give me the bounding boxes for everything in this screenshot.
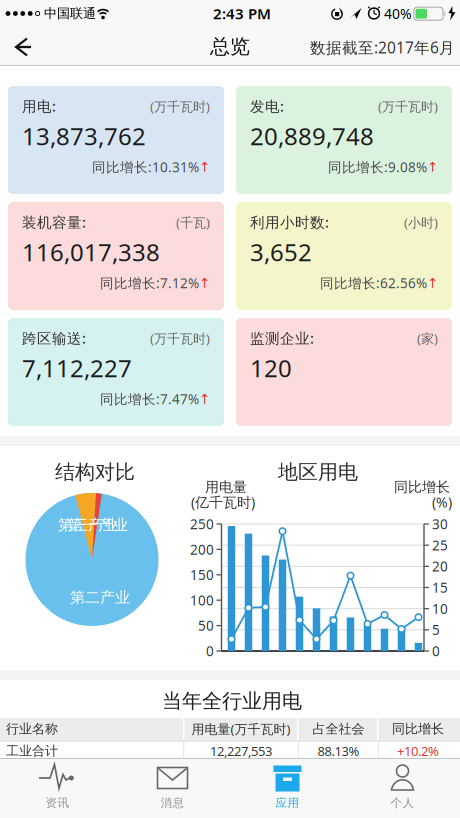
staticText: 消息 bbox=[160, 796, 184, 810]
staticText: (小时) bbox=[404, 214, 438, 231]
button[interactable] bbox=[0, 27, 44, 66]
staticText: 88.13% bbox=[317, 742, 359, 760]
staticText: 利用小时数: bbox=[250, 212, 329, 232]
button[interactable]: 应用 bbox=[230, 758, 345, 818]
staticText: 总览 bbox=[210, 34, 250, 59]
staticText: (万千瓦时) bbox=[150, 98, 210, 115]
staticText: 数据截至:2017年6月 bbox=[310, 37, 455, 58]
staticText: ↑ bbox=[199, 275, 210, 291]
staticText: 120 bbox=[250, 352, 292, 384]
staticText: 20 bbox=[432, 557, 448, 575]
staticText: (家) bbox=[417, 330, 438, 347]
staticText: 同比增长:10.31% bbox=[92, 158, 199, 176]
staticText: 第二产业 bbox=[70, 588, 130, 607]
staticText: 25 bbox=[432, 536, 448, 554]
staticText: 150 bbox=[190, 566, 214, 584]
staticText: 同比增长:7.12% bbox=[100, 274, 199, 292]
staticText: 12,227,553 bbox=[210, 742, 272, 760]
staticText: 10 bbox=[432, 599, 448, 618]
staticText: 工业合计 bbox=[6, 743, 58, 759]
staticText: 同比增长:62.56% bbox=[320, 274, 427, 292]
staticText: (万千瓦时) bbox=[150, 330, 210, 347]
staticText: (千瓦) bbox=[176, 214, 210, 231]
staticText: 用电: bbox=[22, 96, 56, 116]
button[interactable]: 个人 bbox=[345, 758, 460, 818]
staticText: ↑ bbox=[427, 159, 438, 175]
staticText: 个人 bbox=[390, 796, 414, 810]
staticText: 地区用电 bbox=[278, 459, 358, 485]
staticText: 占全社会 bbox=[312, 721, 364, 737]
staticText: ↑ bbox=[199, 159, 210, 175]
staticText: 116,017,338 bbox=[22, 236, 160, 268]
staticText: 应用 bbox=[275, 796, 299, 810]
staticText: 50 bbox=[198, 616, 214, 635]
staticText: 同比增长 bbox=[394, 478, 450, 496]
staticText: 当年全行业用电 bbox=[162, 688, 302, 714]
staticText: 资讯 bbox=[45, 796, 69, 810]
staticText: 第一产业 bbox=[68, 516, 128, 534]
staticText: 用电量 bbox=[205, 478, 247, 496]
staticText: 40% bbox=[384, 4, 412, 23]
staticText: ↑ bbox=[199, 391, 210, 407]
staticText: 装机容量: bbox=[22, 212, 86, 232]
staticText: 发电: bbox=[250, 96, 284, 116]
staticText: 行业名称 bbox=[6, 721, 58, 737]
staticText: 结构对比 bbox=[55, 459, 135, 485]
staticText: 15 bbox=[432, 578, 448, 597]
staticText: (万千瓦时) bbox=[378, 98, 438, 115]
staticText: ↑ bbox=[427, 275, 438, 291]
staticText: 250 bbox=[190, 515, 214, 533]
staticText: 0 bbox=[432, 642, 440, 660]
staticText: (亿千瓦时) bbox=[191, 492, 255, 512]
staticText: 同比增长 bbox=[392, 721, 444, 737]
staticText: 0 bbox=[206, 642, 214, 660]
staticText: 监测企业: bbox=[250, 328, 314, 348]
staticText: 同比增长:9.08% bbox=[328, 158, 427, 176]
staticText: +10.2% bbox=[397, 742, 439, 760]
staticText: 用电量(万千瓦时) bbox=[191, 720, 290, 738]
staticText: 同比增长:7.47% bbox=[100, 390, 199, 408]
button[interactable]: 资讯 bbox=[0, 758, 115, 818]
staticText: 2:43 PM bbox=[213, 3, 271, 24]
staticText: 5 bbox=[432, 621, 440, 639]
staticText: 7,112,227 bbox=[22, 352, 132, 384]
staticText: 30 bbox=[432, 515, 448, 533]
staticText: 3,652 bbox=[250, 236, 312, 268]
staticText: 跨区输送: bbox=[22, 328, 86, 348]
staticText: 100 bbox=[190, 591, 214, 609]
staticText: 中国联通 bbox=[44, 5, 96, 22]
staticText: 第三产业 bbox=[58, 516, 118, 534]
button[interactable]: 消息 bbox=[115, 758, 230, 818]
staticText: 200 bbox=[190, 540, 214, 559]
staticText: (%) bbox=[432, 492, 452, 512]
staticText: 13,873,762 bbox=[22, 120, 146, 152]
staticText: 20,889,748 bbox=[250, 120, 374, 152]
